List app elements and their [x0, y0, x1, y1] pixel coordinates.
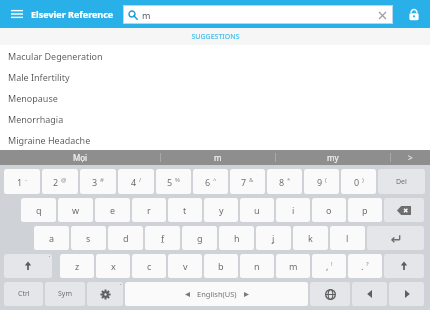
- staticText: (: [325, 176, 327, 184]
- staticText: l: [346, 232, 349, 244]
- button[interactable]: Menorrhagia: [0, 108, 430, 129]
- button[interactable]: i: [276, 198, 310, 222]
- button[interactable]: a: [34, 226, 69, 250]
- button[interactable]: Mọi: [0, 150, 160, 165]
- button[interactable]: j: [256, 226, 291, 250]
- button[interactable]: Male Infertility: [0, 66, 430, 87]
- button[interactable]: r: [132, 198, 166, 222]
- staticText: y: [219, 204, 224, 216]
- button[interactable]: 4: [118, 169, 154, 194]
- button[interactable]: Menopause: [0, 87, 430, 108]
- staticText: !: [331, 260, 333, 268]
- staticText: Male Infertility: [8, 71, 70, 83]
- button[interactable]: v: [168, 254, 202, 278]
- button[interactable]: 8: [267, 169, 302, 194]
- button[interactable]: y: [204, 198, 238, 222]
- button[interactable]: Lock: [402, 2, 426, 26]
- button[interactable]: 0: [341, 169, 376, 194]
- staticText: i: [292, 204, 295, 216]
- staticText: -: [25, 176, 27, 184]
- button[interactable]: b: [204, 254, 238, 278]
- staticText: Macular Degeneration: [8, 50, 103, 62]
- staticText: Del: [396, 177, 407, 187]
- button[interactable]: x: [96, 254, 130, 278]
- staticText: Migraine Headache: [8, 134, 91, 146]
- staticText: h: [234, 232, 240, 244]
- button[interactable]: q: [21, 198, 56, 222]
- staticText: &: [249, 176, 254, 184]
- staticText: %: [175, 176, 180, 184]
- button[interactable]: .: [348, 254, 382, 278]
- button[interactable]: Enter: [367, 226, 424, 250]
- button[interactable]: s: [71, 226, 106, 250]
- button[interactable]: 3: [80, 169, 116, 194]
- staticText: 0: [354, 176, 360, 188]
- staticText: r: [147, 204, 151, 216]
- button[interactable]: Del: [378, 169, 425, 194]
- button[interactable]: 7: [230, 169, 265, 194]
- button[interactable]: Shift: [4, 254, 52, 278]
- staticText: 1: [17, 176, 23, 188]
- button[interactable]: c: [132, 254, 166, 278]
- button[interactable]: Change language: [310, 282, 350, 306]
- button[interactable]: 9: [304, 169, 339, 194]
- button[interactable]: m: [123, 5, 393, 24]
- button[interactable]: o: [312, 198, 346, 222]
- staticText: z: [75, 260, 80, 272]
- button[interactable]: 1: [4, 169, 40, 194]
- button[interactable]: f: [145, 226, 180, 250]
- staticText: j: [272, 232, 275, 244]
- staticText: Mọi: [73, 152, 88, 163]
- button[interactable]: Migraine Headache: [0, 129, 430, 150]
- button[interactable]: 6: [193, 169, 228, 194]
- staticText: 4: [131, 176, 137, 188]
- button[interactable]: k: [293, 226, 328, 250]
- staticText: Menorrhagia: [8, 113, 64, 125]
- staticText: 7: [241, 176, 247, 188]
- button[interactable]: my: [276, 150, 390, 165]
- button[interactable]: p: [348, 198, 382, 222]
- button[interactable]: Keyboard settings: [87, 282, 123, 306]
- button[interactable]: z: [60, 254, 94, 278]
- staticText: ?: [366, 260, 369, 268]
- button[interactable]: e: [95, 198, 130, 222]
- staticText: s: [86, 232, 91, 244]
- button[interactable]: ,: [312, 254, 346, 278]
- button[interactable]: m: [276, 254, 310, 278]
- staticText: 3: [92, 176, 98, 188]
- button[interactable]: Move cursor right: [389, 282, 424, 306]
- button[interactable]: g: [182, 226, 217, 250]
- staticText: /: [139, 176, 142, 184]
- button[interactable]: l: [330, 226, 365, 250]
- button[interactable]: m: [161, 150, 275, 165]
- button[interactable]: Macular Degeneration: [0, 45, 430, 66]
- button[interactable]: More suggestions: [391, 150, 430, 165]
- staticText: u: [254, 204, 260, 216]
- staticText: o: [326, 204, 332, 216]
- button[interactable]: Sym: [45, 282, 85, 306]
- staticText: c: [147, 260, 152, 272]
- staticText: m: [214, 152, 222, 163]
- staticText: x: [111, 260, 116, 272]
- button[interactable]: Open navigation menu: [5, 2, 29, 26]
- button[interactable]: n: [240, 254, 274, 278]
- staticText: ,: [326, 260, 329, 272]
- button[interactable]: Backspace: [384, 198, 424, 222]
- button[interactable]: Space: [125, 282, 308, 306]
- button[interactable]: Move cursor left: [352, 282, 387, 306]
- button[interactable]: 5: [156, 169, 191, 194]
- staticText: f: [161, 232, 165, 244]
- button[interactable]: 2: [42, 169, 78, 194]
- staticText: w: [72, 204, 80, 216]
- button[interactable]: Clear search: [374, 7, 390, 23]
- staticText: >: [408, 152, 413, 163]
- button[interactable]: w: [58, 198, 93, 222]
- button[interactable]: u: [240, 198, 274, 222]
- staticText: Elsevier Reference: [31, 8, 114, 20]
- button[interactable]: t: [168, 198, 202, 222]
- staticText: English(US): [197, 289, 237, 299]
- button[interactable]: Ctrl: [4, 282, 43, 306]
- button[interactable]: Shift: [384, 254, 424, 278]
- button[interactable]: d: [108, 226, 143, 250]
- button[interactable]: h: [219, 226, 254, 250]
